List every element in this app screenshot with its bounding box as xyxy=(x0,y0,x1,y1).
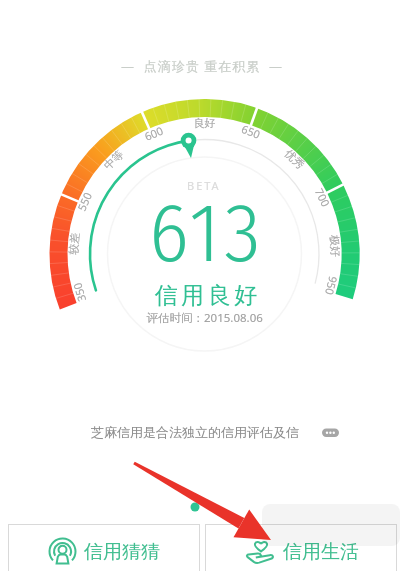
staticText: 信用猜猜 xyxy=(84,540,160,564)
staticText: 信用生活 xyxy=(283,540,359,564)
button[interactable]: 信用猜猜 xyxy=(8,524,200,571)
button[interactable]: 信用生活 xyxy=(205,524,397,571)
